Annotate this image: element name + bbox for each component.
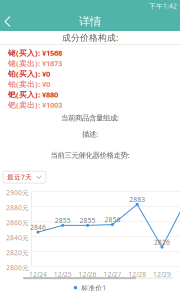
staticText: 2880元 — [6, 203, 29, 212]
staticText: 2820元 — [6, 248, 29, 257]
staticText: 2860元 — [6, 218, 29, 227]
staticText: 12/27 — [103, 270, 121, 279]
staticText: 12/28 — [128, 270, 146, 279]
staticText: 成分价格构成: — [62, 31, 118, 43]
staticText: 2800元 — [6, 263, 29, 272]
staticText: 钯(卖出): ¥1003 — [8, 100, 62, 110]
button[interactable]: Back — [0, 12, 20, 31]
staticText: 铂(卖出): ¥0 — [8, 79, 50, 89]
staticText: 2900元 — [6, 188, 29, 197]
staticText: 描述: — [82, 129, 98, 139]
staticText: 当前三元催化器价格走势: — [50, 150, 129, 160]
staticText: 最近7天 — [7, 173, 32, 182]
staticText: 2855 — [55, 216, 71, 225]
staticText: 下午1:42 — [149, 1, 177, 11]
staticText: 详情 — [79, 14, 101, 29]
staticText: 2840元 — [6, 233, 29, 242]
staticText: 12/29 — [153, 270, 171, 279]
staticText: 2883 — [129, 195, 145, 204]
staticText: 2855 — [80, 216, 96, 225]
staticText: 12/25 — [54, 270, 72, 279]
staticText: 12/26 — [79, 270, 97, 279]
button[interactable]: 最近7天 — [3, 171, 46, 183]
staticText: 12/24 — [29, 270, 47, 279]
staticText: 标准价1 — [81, 283, 106, 292]
staticText: 铂(买入): ¥0 — [8, 68, 50, 79]
staticText: 铑(买入): ¥1568 — [8, 48, 62, 58]
staticText: 铑(卖出): ¥1673 — [8, 58, 62, 68]
staticText: 2826 — [154, 238, 170, 247]
staticText: 2856 — [104, 215, 120, 224]
staticText: 钯(买入): ¥880 — [8, 89, 58, 100]
staticText: 2846 — [30, 223, 46, 232]
staticText: 当前商品含量组成: — [61, 113, 119, 123]
